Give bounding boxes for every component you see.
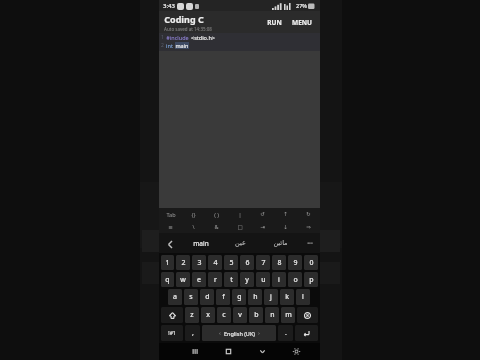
staticText: 7 xyxy=(261,258,266,268)
button[interactable]: ⇒ xyxy=(297,220,320,233)
button[interactable]: !#1 xyxy=(161,325,183,341)
staticText: p xyxy=(309,275,314,285)
button[interactable]: k xyxy=(280,289,294,305)
button[interactable]: عين xyxy=(220,233,260,253)
button[interactable]: r xyxy=(208,272,222,287)
staticText: r xyxy=(214,275,217,285)
staticText: 1 xyxy=(165,258,170,268)
staticText: d xyxy=(205,292,210,302)
button[interactable]: 4 xyxy=(208,255,222,270)
button[interactable]: , xyxy=(185,325,200,341)
staticText: Coding C xyxy=(164,13,204,25)
staticText: s xyxy=(189,292,193,302)
staticText: RUN xyxy=(267,18,282,27)
button[interactable]: Keyboard settings xyxy=(279,343,313,360)
button[interactable]: ↺ xyxy=(251,208,274,220)
button[interactable]: z xyxy=(185,307,199,323)
button[interactable]: 1 xyxy=(161,255,174,270)
button[interactable]: q xyxy=(161,272,174,287)
button[interactable]: □ xyxy=(228,220,251,233)
button[interactable]: e xyxy=(192,272,206,287)
staticText: 3 xyxy=(197,258,202,268)
button[interactable]: . xyxy=(278,325,293,341)
staticText: f xyxy=(222,292,225,302)
button[interactable]: t xyxy=(224,272,238,287)
button[interactable]: Back xyxy=(245,343,279,360)
button[interactable]: x xyxy=(201,307,215,323)
staticText: ↺ xyxy=(260,211,265,217)
button[interactable]: main xyxy=(181,233,220,253)
button[interactable]: 8 xyxy=(272,255,286,270)
staticText: z xyxy=(190,310,194,320)
button[interactable]: {} xyxy=(182,208,205,220)
button[interactable]: 3 xyxy=(192,255,206,270)
button[interactable]: RUN xyxy=(264,16,285,29)
staticText: عين xyxy=(235,239,246,247)
button[interactable]: n xyxy=(265,307,279,323)
button[interactable]: 5 xyxy=(224,255,238,270)
button[interactable]: l xyxy=(296,289,310,305)
button[interactable]: | xyxy=(228,208,251,220)
staticText: u xyxy=(261,275,266,285)
staticText: k xyxy=(285,292,289,302)
button[interactable]: ↻ xyxy=(297,208,320,220)
staticText: Auto saved at 14:35:08 xyxy=(164,26,212,32)
button[interactable]: مائين xyxy=(260,233,300,253)
button[interactable]: f xyxy=(216,289,230,305)
staticText: <stdio.h> xyxy=(191,34,215,41)
button[interactable]: h xyxy=(248,289,262,305)
button[interactable]: ≡ xyxy=(159,220,182,233)
button[interactable]: More suggestions xyxy=(300,233,320,253)
button[interactable]: ( ) xyxy=(205,208,228,220)
button[interactable]: o xyxy=(288,272,302,287)
button[interactable]: j xyxy=(264,289,278,305)
button[interactable]: & xyxy=(205,220,228,233)
button[interactable]: Previous suggestions xyxy=(159,233,181,253)
button[interactable]: 0 xyxy=(304,255,318,270)
button[interactable]: Enter xyxy=(295,325,318,341)
button[interactable]: p xyxy=(304,272,318,287)
staticText: 1 xyxy=(161,34,164,41)
staticText: ↑ xyxy=(283,211,288,217)
button[interactable]: s xyxy=(184,289,198,305)
button[interactable]: y xyxy=(240,272,254,287)
button[interactable]: Tab xyxy=(159,208,182,220)
button[interactable]: ↑ xyxy=(274,208,297,220)
button[interactable]: Recent apps xyxy=(178,343,211,360)
staticText: !#1 xyxy=(168,330,176,337)
staticText: ⇥ xyxy=(260,224,265,230)
button[interactable]: m xyxy=(281,307,295,323)
staticText: English (UK) xyxy=(224,330,255,337)
button[interactable]: ‹ xyxy=(202,325,276,341)
button[interactable]: ↓ xyxy=(274,220,297,233)
staticText: main xyxy=(175,42,189,49)
button[interactable]: 7 xyxy=(256,255,270,270)
button[interactable]: b xyxy=(249,307,263,323)
staticText: 8 xyxy=(277,258,282,268)
staticText: 9 xyxy=(293,258,298,268)
button[interactable]: MENU xyxy=(289,16,315,29)
button[interactable]: a xyxy=(168,289,182,305)
button[interactable]: g xyxy=(232,289,246,305)
button[interactable]: c xyxy=(217,307,231,323)
button[interactable]: u xyxy=(256,272,270,287)
staticText: e xyxy=(197,275,201,285)
button[interactable]: Home xyxy=(211,343,245,360)
button[interactable]: 6 xyxy=(240,255,254,270)
button[interactable]: d xyxy=(200,289,214,305)
button[interactable]: ⇥ xyxy=(251,220,274,233)
button[interactable]: Backspace xyxy=(297,307,318,323)
button[interactable]: w xyxy=(176,272,190,287)
staticText: ↓ xyxy=(283,224,288,230)
button[interactable]: v xyxy=(233,307,247,323)
staticText: h xyxy=(253,292,258,302)
staticText: m xyxy=(285,310,292,320)
button[interactable]: Shift xyxy=(161,307,183,323)
button[interactable]: i xyxy=(272,272,286,287)
staticText: a xyxy=(173,292,177,302)
staticText: i xyxy=(278,275,280,285)
button[interactable]: 9 xyxy=(288,255,302,270)
button[interactable]: \ xyxy=(182,220,205,233)
staticText: \ xyxy=(192,223,195,230)
button[interactable]: 2 xyxy=(176,255,190,270)
